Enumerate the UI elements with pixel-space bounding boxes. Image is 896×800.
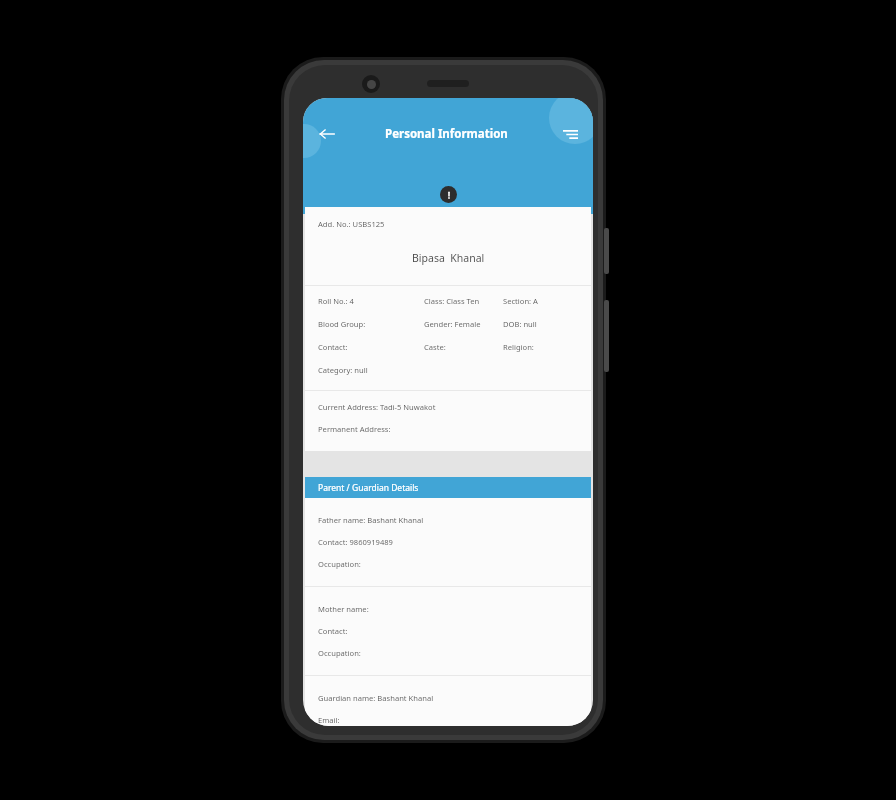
staticText: Class: Class Ten xyxy=(424,296,480,306)
staticText: Add. No.: USBS125 xyxy=(318,219,385,229)
staticText: Roll No.: 4 xyxy=(318,296,354,306)
button[interactable]: Back xyxy=(307,114,347,154)
staticText: Guardian name: Bashant Khanal xyxy=(318,693,434,703)
staticText: Bipasa Khanal xyxy=(412,251,485,265)
staticText: Permanent Address: xyxy=(318,424,391,434)
button[interactable]: Information xyxy=(440,186,457,203)
staticText: Current Address: Tadi-5 Nuwakot xyxy=(318,402,436,412)
staticText: Occupation: xyxy=(318,648,361,658)
staticText: Section: A xyxy=(503,296,538,306)
button[interactable]: Menu xyxy=(553,117,587,151)
staticText: Blood Group: xyxy=(318,319,366,329)
staticText: Occupation: xyxy=(318,559,361,569)
staticText: Caste: xyxy=(424,342,446,352)
staticText: Email: xyxy=(318,715,340,725)
staticText: Personal Information xyxy=(385,126,508,142)
button[interactable]: Parent / Guardian Details xyxy=(305,477,591,498)
staticText: Contact: 9860919489 xyxy=(318,537,393,547)
staticText: Father name: Bashant Khanal xyxy=(318,515,424,525)
staticText: Contact: xyxy=(318,342,348,352)
staticText: Category: null xyxy=(318,365,368,375)
staticText: Religion: xyxy=(503,342,534,352)
staticText: Mother name: xyxy=(318,604,369,614)
staticText: Contact: xyxy=(318,626,348,636)
staticText: DOB: null xyxy=(503,319,537,329)
staticText: Gender: Female xyxy=(424,319,481,329)
staticText: Parent / Guardian Details xyxy=(318,482,419,494)
